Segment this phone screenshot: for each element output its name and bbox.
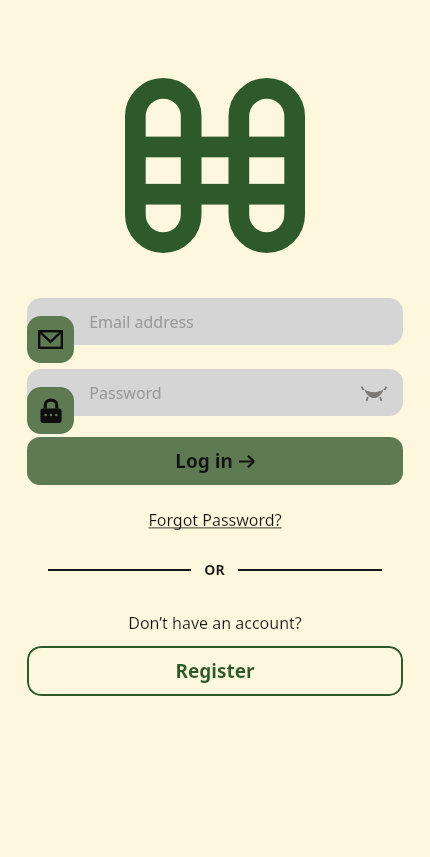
staticText: Email address (89, 311, 194, 333)
staticText: Password (89, 382, 162, 404)
staticText: Register (175, 658, 255, 684)
button[interactable]: Forgot Password? (142, 507, 288, 533)
button[interactable]: Show password (357, 376, 391, 410)
button[interactable]: Password (27, 387, 74, 434)
staticText: OR (204, 560, 225, 579)
button[interactable]: Email (27, 316, 74, 363)
button[interactable]: Password (27, 369, 403, 416)
button[interactable]: Register (27, 646, 403, 696)
staticText: Forgot Password? (148, 509, 282, 531)
staticText: Don’t have an account? (128, 612, 302, 634)
staticText: Log in (175, 448, 233, 474)
button[interactable]: Email address (27, 298, 403, 345)
button[interactable]: Log in (27, 437, 403, 485)
